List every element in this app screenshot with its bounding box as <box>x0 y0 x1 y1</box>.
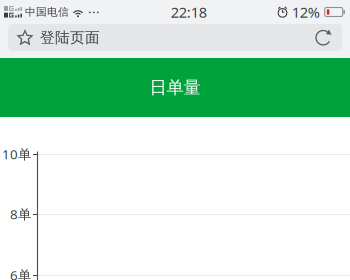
button[interactable]: Reload <box>306 24 342 51</box>
staticText: ··· <box>88 3 100 21</box>
staticText: 8单 <box>10 205 31 223</box>
staticText: 12% <box>292 2 320 22</box>
staticText: 登陆页面 <box>40 28 100 46</box>
staticText: 日单量 <box>149 77 200 98</box>
staticText: 22:18 <box>171 2 207 22</box>
staticText: 6单 <box>10 266 31 280</box>
staticText: 中国电信 <box>25 5 69 18</box>
button[interactable]: 登陆页面 <box>8 24 306 51</box>
staticText: 10单 <box>2 145 31 163</box>
